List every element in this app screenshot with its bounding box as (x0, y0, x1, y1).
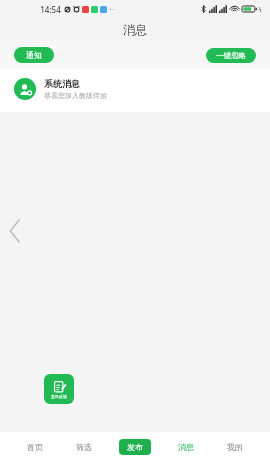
staticText: 消息 (178, 442, 194, 452)
staticText: 消息 (123, 22, 147, 37)
staticText: 我的 (227, 442, 243, 452)
staticText: ··· (109, 5, 115, 15)
button[interactable]: 消息 (172, 438, 200, 456)
staticText: 意见反馈 (51, 394, 67, 399)
staticText: 发布 (127, 442, 143, 452)
button[interactable]: 系统消息 (0, 70, 270, 108)
button[interactable]: 意见反馈 (44, 374, 74, 404)
staticText: ϟ (258, 5, 262, 13)
button[interactable]: 首页 (21, 438, 49, 456)
button[interactable]: 发布 (119, 439, 151, 455)
staticText: 14:54 (40, 4, 61, 15)
staticText: 通知 (26, 50, 42, 60)
staticText: 一键忽略 (216, 51, 246, 60)
staticText: 首页 (27, 442, 43, 452)
staticText: 恭喜您加入教练伴游 (44, 91, 107, 100)
staticText: 系统消息 (44, 78, 80, 89)
button[interactable]: 筛选 (70, 438, 98, 456)
staticText: 筛选 (76, 442, 92, 452)
button[interactable]: 通知 (14, 47, 54, 63)
button[interactable]: 一键忽略 (206, 48, 256, 63)
button[interactable]: 我的 (221, 438, 249, 456)
button[interactable]: Back (6, 214, 22, 248)
